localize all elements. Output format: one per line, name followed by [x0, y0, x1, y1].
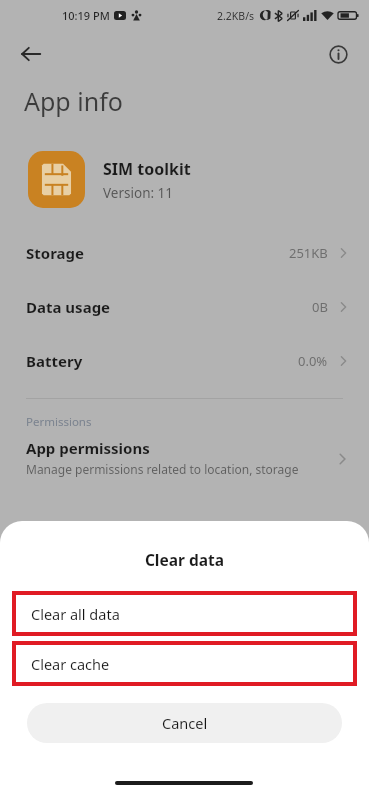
staticText: Manage permissions related to location, … [26, 461, 299, 477]
button[interactable]: Data usage [0, 280, 369, 334]
button[interactable]: Back [14, 37, 48, 71]
button[interactable]: Clear all data [16, 595, 353, 632]
staticText: 251KB [289, 244, 328, 262]
staticText: 10:19 PM [62, 8, 110, 23]
staticText: 0.0% [298, 352, 328, 370]
button[interactable]: App permissions [0, 438, 369, 477]
staticText: Storage [26, 243, 289, 263]
staticText: 0B [312, 298, 328, 316]
staticText: App permissions [26, 438, 150, 458]
staticText: Clear data [0, 549, 369, 570]
staticText: Permissions [26, 414, 92, 430]
button[interactable]: Cancel [27, 703, 342, 743]
button[interactable]: Clear cache [16, 645, 353, 682]
staticText: SIM toolkit [103, 158, 191, 180]
button[interactable]: Battery [0, 334, 369, 388]
staticText: App info [24, 84, 123, 118]
staticText: Cancel [162, 713, 208, 733]
button[interactable]: Storage [0, 226, 369, 280]
staticText: Battery [26, 351, 298, 371]
staticText: Data usage [26, 297, 312, 317]
staticText: 2.2KB/s [217, 9, 255, 23]
staticText: Version: 11 [103, 184, 174, 202]
button[interactable]: App info details [323, 39, 353, 69]
staticText: Clear cache [31, 654, 110, 674]
staticText: Clear all data [31, 604, 120, 624]
